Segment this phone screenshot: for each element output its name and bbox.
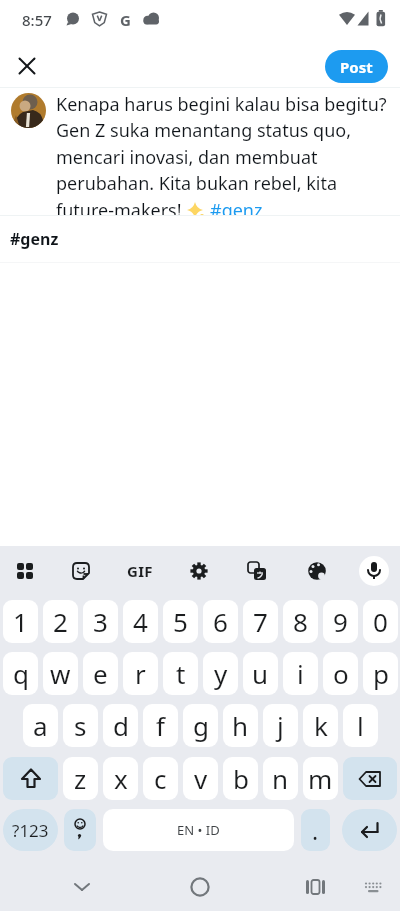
button[interactable]: a	[23, 704, 58, 747]
staticText: 4	[133, 604, 148, 639]
staticText: 3	[93, 604, 108, 639]
staticText: u	[252, 656, 269, 691]
staticText: j	[277, 708, 284, 743]
staticText: k	[314, 708, 328, 743]
button[interactable]	[3, 549, 47, 593]
button[interactable]: v	[183, 757, 218, 800]
button[interactable]: 3	[83, 600, 118, 643]
staticText: h	[232, 708, 249, 743]
staticText: n	[272, 761, 289, 796]
button[interactable]	[235, 549, 279, 593]
button[interactable]	[180, 867, 220, 907]
staticText: m	[308, 761, 333, 796]
staticText: z	[74, 761, 87, 796]
staticText: c	[154, 761, 167, 796]
button[interactable]: i	[283, 652, 318, 695]
button[interactable]: y	[203, 652, 238, 695]
button[interactable]: z	[63, 757, 98, 800]
staticText: e	[93, 656, 108, 691]
button[interactable]: j	[263, 704, 298, 747]
staticText: EN • ID	[177, 821, 220, 839]
staticText: G	[120, 10, 131, 30]
staticText: f	[156, 708, 165, 743]
button[interactable]: .	[301, 809, 330, 851]
staticText: o	[333, 656, 349, 691]
button[interactable]	[177, 549, 221, 593]
staticText: s	[74, 708, 87, 743]
button[interactable]: l	[343, 704, 378, 747]
button[interactable]: n	[263, 757, 298, 800]
staticText: GIF	[127, 561, 153, 581]
button[interactable]: 2	[43, 600, 78, 643]
staticText: 2	[53, 604, 68, 639]
staticText: g	[193, 708, 209, 743]
button[interactable]	[295, 867, 335, 907]
button[interactable]	[62, 867, 102, 907]
button[interactable]: Post	[325, 50, 388, 83]
button[interactable]	[59, 549, 103, 593]
button[interactable]: 5	[163, 600, 198, 643]
button[interactable]: EN • ID	[103, 809, 294, 851]
button[interactable]: #genz	[0, 218, 400, 259]
staticText: 5	[173, 604, 188, 639]
staticText: mencari inovasi, dan membuat	[56, 145, 318, 170]
staticText: a	[33, 708, 48, 743]
staticText: p	[373, 656, 389, 691]
staticText: Gen Z suka menantang status quo,	[56, 118, 352, 143]
button[interactable]: 8	[283, 600, 318, 643]
button[interactable]: x	[103, 757, 138, 800]
button[interactable]	[355, 870, 391, 906]
button[interactable]: o	[323, 652, 358, 695]
button[interactable]: t	[163, 652, 198, 695]
button[interactable]: f	[143, 704, 178, 747]
staticText: perubahan. Kita bukan rebel, kita	[56, 171, 338, 196]
button[interactable]: m	[303, 757, 338, 800]
staticText: 8	[293, 604, 308, 639]
button[interactable]: d	[103, 704, 138, 747]
staticText: Kenapa harus begini kalau bisa begitu?	[56, 92, 387, 117]
staticText: x	[114, 761, 128, 796]
button[interactable]: 1	[3, 600, 38, 643]
button[interactable]	[359, 556, 389, 586]
button[interactable]: s	[63, 704, 98, 747]
button[interactable]: 9	[323, 600, 358, 643]
button[interactable]: u	[243, 652, 278, 695]
staticText: Post	[340, 57, 373, 77]
button[interactable]: h	[223, 704, 258, 747]
staticText: b	[233, 761, 249, 796]
staticText: 6	[213, 604, 228, 639]
staticText: d	[113, 708, 129, 743]
button[interactable]: ?123	[3, 809, 58, 851]
staticText: future-makers!	[56, 198, 187, 215]
button[interactable]	[295, 549, 339, 593]
button[interactable]	[343, 757, 397, 800]
staticText: 9	[333, 604, 348, 639]
button[interactable]: c	[143, 757, 178, 800]
button[interactable]: 7	[243, 600, 278, 643]
button[interactable]	[342, 809, 397, 851]
staticText: 0	[373, 604, 388, 639]
button[interactable]	[13, 52, 41, 80]
staticText: t	[176, 656, 186, 691]
staticText: q	[13, 656, 29, 691]
staticText: v	[194, 761, 208, 796]
button[interactable]: w	[43, 652, 78, 695]
button[interactable]: r	[123, 652, 158, 695]
staticText: l	[357, 708, 364, 743]
button[interactable]: GIF	[118, 549, 162, 593]
button[interactable]: 0	[363, 600, 398, 643]
button[interactable]	[3, 757, 58, 800]
button[interactable]: 6	[203, 600, 238, 643]
button[interactable]: p	[363, 652, 398, 695]
button[interactable]: g	[183, 704, 218, 747]
button[interactable]: 4	[123, 600, 158, 643]
staticText: i	[297, 656, 304, 691]
button[interactable]: q	[3, 652, 38, 695]
button[interactable]: e	[83, 652, 118, 695]
button[interactable]	[64, 809, 96, 851]
button[interactable]: b	[223, 757, 258, 800]
staticText: ?123	[12, 819, 49, 842]
staticText: #genz	[10, 228, 59, 250]
button[interactable]: k	[303, 704, 338, 747]
staticText: y	[214, 656, 228, 691]
